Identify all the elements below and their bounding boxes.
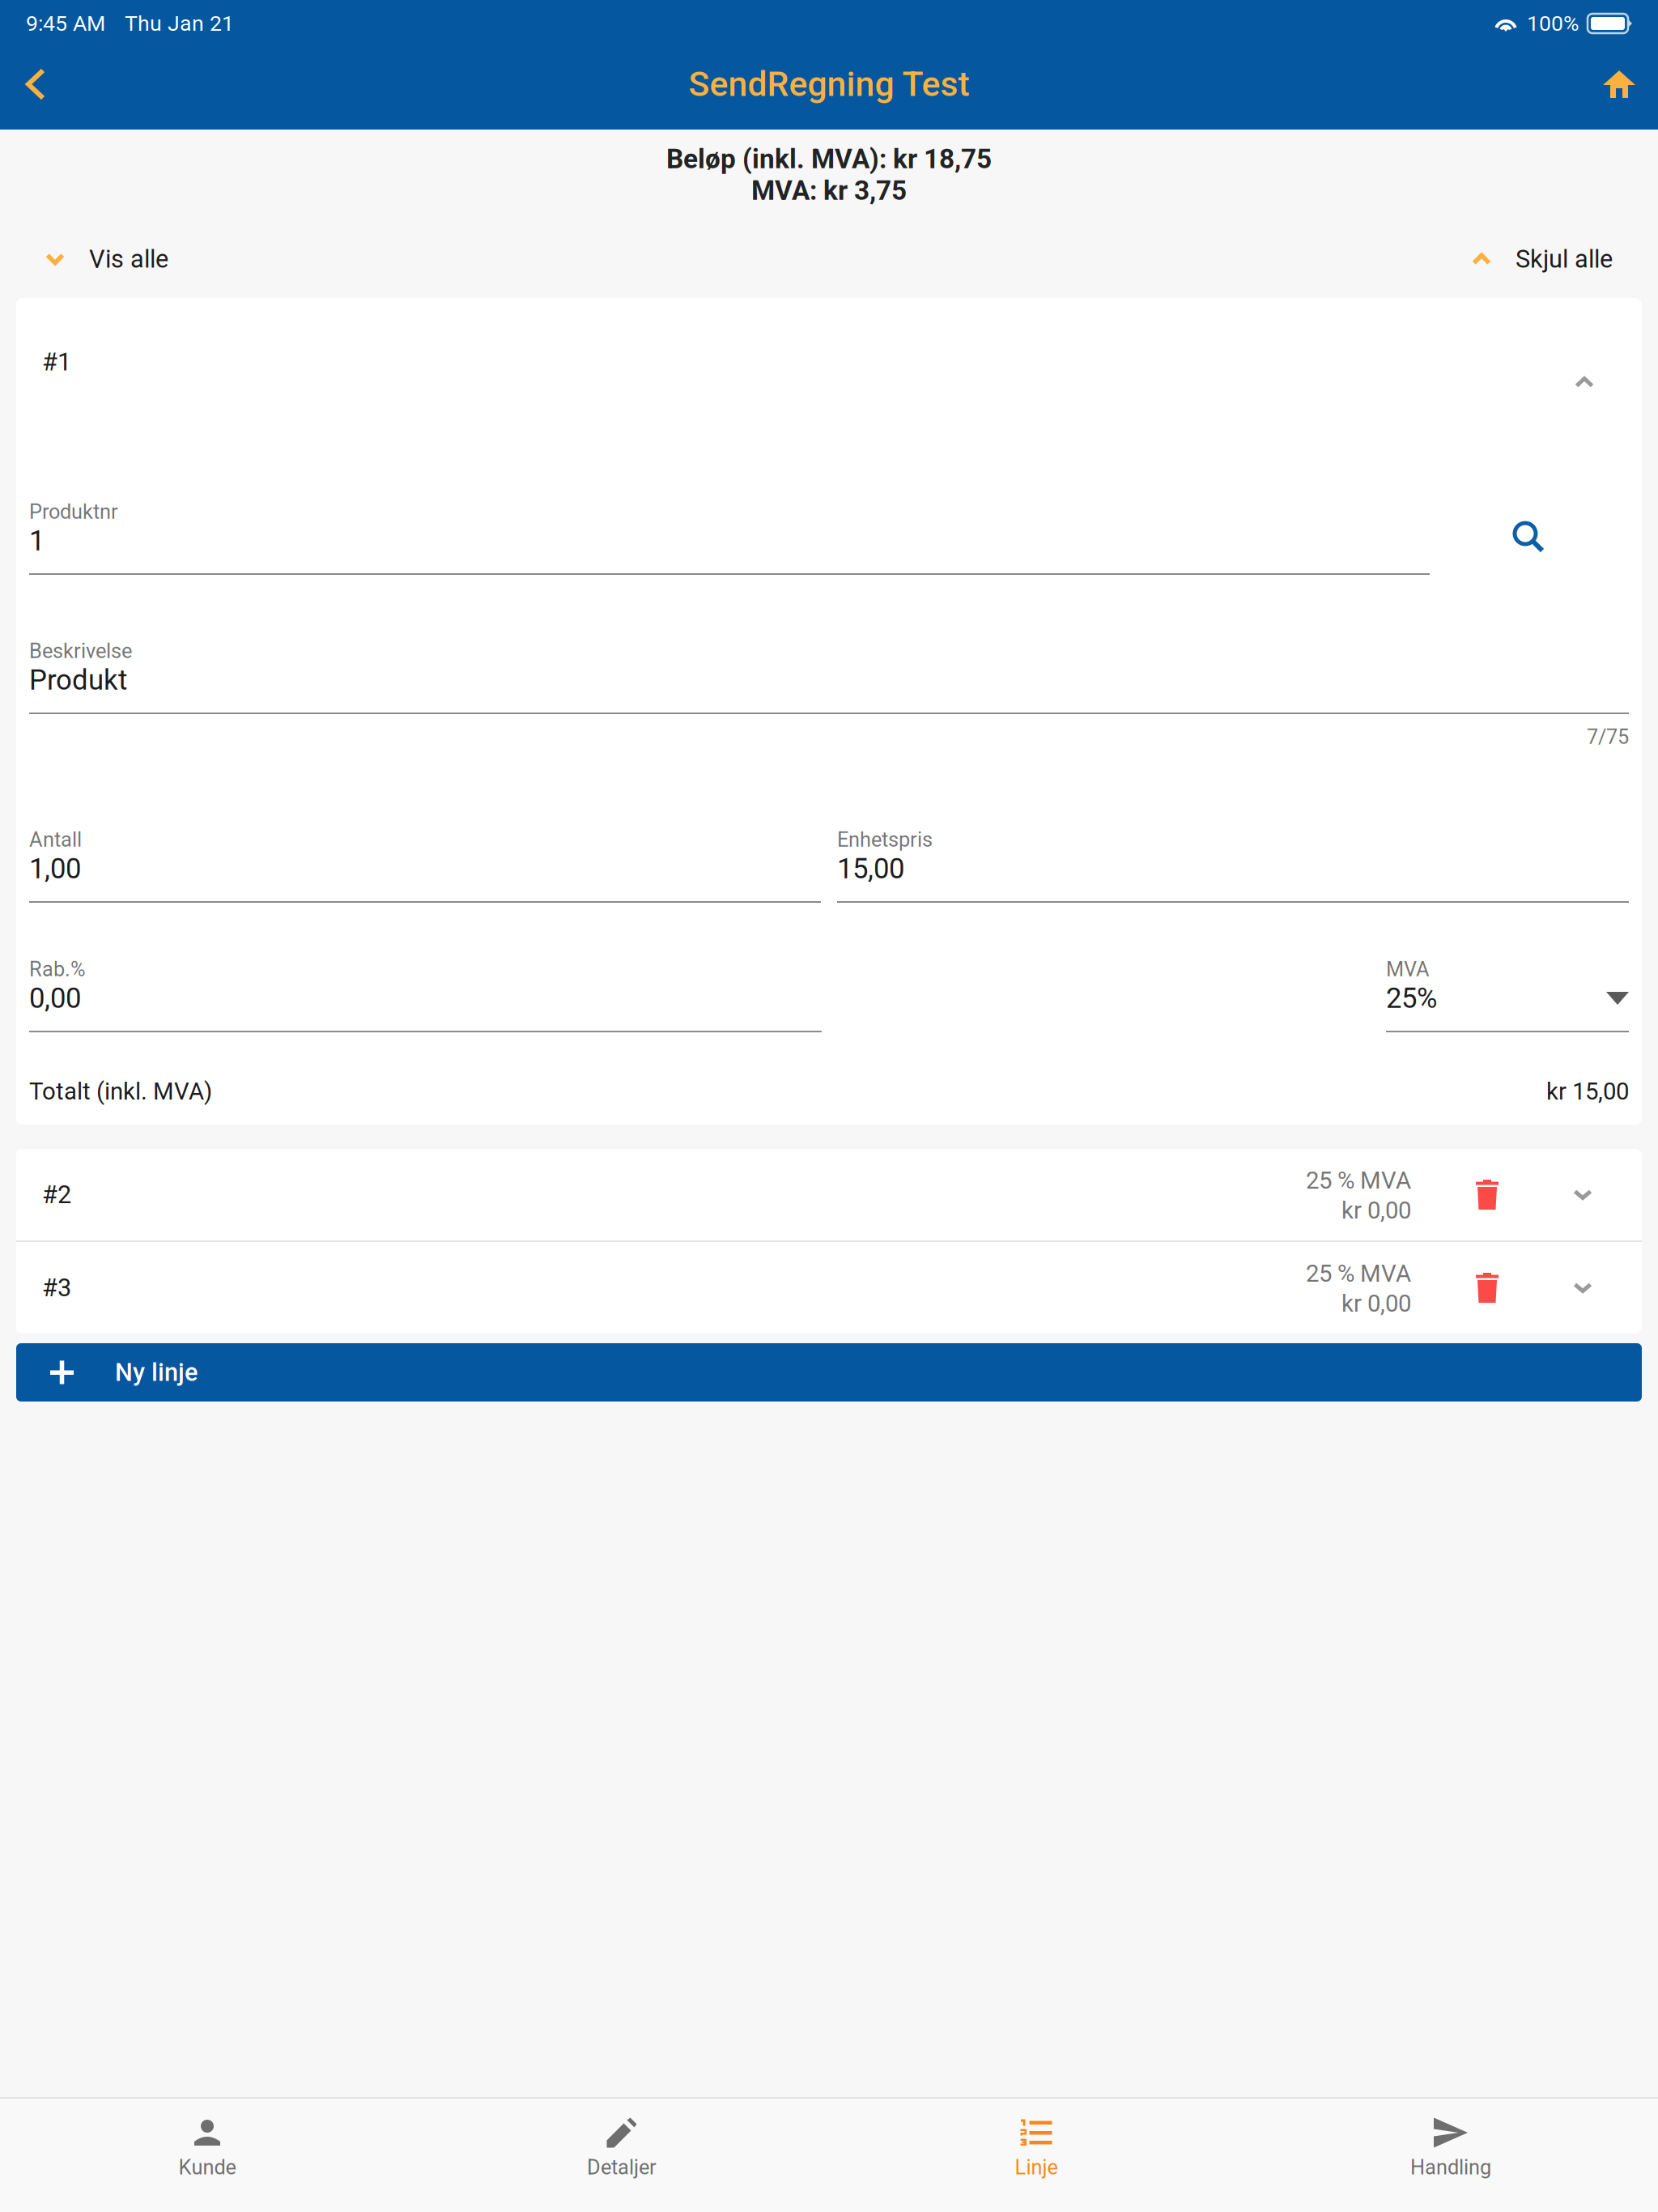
button[interactable]: Ny linje <box>16 1343 1642 1402</box>
button[interactable]: Collapse line 1 <box>1540 342 1629 423</box>
button[interactable]: Search product <box>1479 498 1576 576</box>
staticText: Antall <box>29 828 82 852</box>
staticText: Handling <box>1410 2155 1491 2179</box>
staticText: Produktnr <box>29 500 118 524</box>
staticText: 0,00 <box>29 982 81 1015</box>
button[interactable]: Handling <box>1243 2099 1658 2212</box>
staticText: Produkt <box>29 664 127 697</box>
staticText: SendRegning Test <box>689 64 969 104</box>
staticText: 25 % MVA <box>1306 1260 1411 1288</box>
staticText: Ny linje <box>115 1358 198 1387</box>
staticText: #3 <box>42 1273 71 1302</box>
button[interactable]: Kunde <box>0 2099 414 2212</box>
staticText: Beskrivelse <box>29 639 132 663</box>
staticText: Detaljer <box>587 2155 657 2179</box>
button[interactable]: #3 <box>16 1242 1642 1334</box>
staticText: 1,00 <box>29 852 81 885</box>
staticText: Rab.% <box>29 957 86 981</box>
button[interactable]: Linje <box>829 2099 1243 2212</box>
staticText: 25% <box>1386 982 1437 1015</box>
staticText: kr 0,00 <box>1341 1290 1411 1317</box>
staticText: 25 % MVA <box>1306 1167 1411 1194</box>
button[interactable]: Vis alle <box>18 225 196 293</box>
staticText: 7/75 <box>1587 725 1629 749</box>
staticText: 9:45 AM <box>26 11 105 36</box>
staticText: MVA <box>1386 957 1430 981</box>
button[interactable]: Skjul alle <box>1444 225 1640 293</box>
staticText: Vis alle <box>89 245 168 274</box>
staticText: Kunde <box>179 2155 236 2179</box>
staticText: MVA: kr 3,75 <box>751 175 907 206</box>
staticText: Skjul alle <box>1516 245 1613 274</box>
staticText: kr 15,00 <box>1546 1077 1629 1105</box>
button[interactable]: #2 <box>16 1149 1642 1240</box>
button[interactable]: Back <box>3 43 68 125</box>
staticText: Linje <box>1015 2155 1058 2179</box>
button[interactable]: Detaljer <box>414 2099 829 2212</box>
staticText: 100% <box>1527 11 1579 36</box>
staticText: kr 0,00 <box>1341 1197 1411 1224</box>
button[interactable]: Home <box>1584 43 1655 125</box>
staticText: Totalt (inkl. MVA) <box>29 1077 212 1105</box>
staticText: #2 <box>42 1180 71 1209</box>
staticText: Beløp (inkl. MVA): kr 18,75 <box>666 143 992 175</box>
staticText: #1 <box>42 347 71 376</box>
staticText: 1 <box>29 524 45 557</box>
staticText: Enhetspris <box>837 828 933 852</box>
staticText: 15,00 <box>837 852 904 885</box>
staticText: Thu Jan 21 <box>125 11 234 36</box>
